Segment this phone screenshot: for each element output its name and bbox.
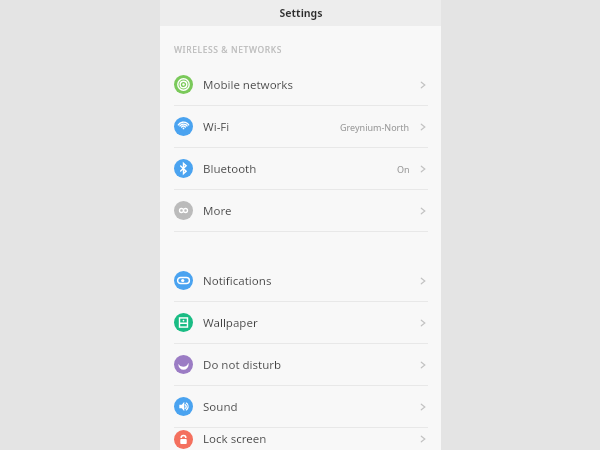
button[interactable]: More bbox=[160, 190, 441, 231]
button[interactable]: Bluetooth bbox=[160, 148, 441, 189]
staticText: WIRELESS & NETWORKS bbox=[174, 44, 282, 56]
staticText: Sound bbox=[203, 399, 238, 415]
staticText: Lock screen bbox=[203, 431, 267, 447]
staticText: Wallpaper bbox=[203, 315, 258, 331]
button[interactable]: Lock screen bbox=[160, 428, 441, 450]
staticText: Bluetooth bbox=[203, 161, 257, 177]
button[interactable]: Notifications bbox=[160, 260, 441, 301]
staticText: Greynium-North bbox=[340, 121, 410, 133]
button[interactable]: Wallpaper bbox=[160, 302, 441, 343]
staticText: Do not disturb bbox=[203, 357, 282, 373]
staticText: Wi-Fi bbox=[203, 119, 230, 135]
staticText: More bbox=[203, 203, 232, 219]
staticText: Settings bbox=[279, 6, 323, 20]
staticText: On bbox=[397, 163, 410, 175]
button[interactable]: Do not disturb bbox=[160, 344, 441, 385]
button[interactable]: Wi-Fi bbox=[160, 106, 441, 147]
staticText: Mobile networks bbox=[203, 77, 294, 93]
button[interactable]: Sound bbox=[160, 386, 441, 427]
staticText: Notifications bbox=[203, 273, 272, 289]
button[interactable]: Mobile networks bbox=[160, 64, 441, 105]
